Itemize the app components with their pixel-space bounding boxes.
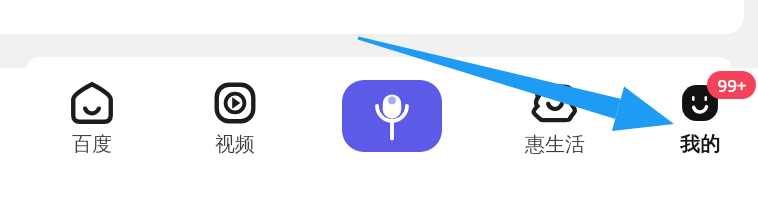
staticText: 百度 [72,132,112,157]
button[interactable]: 我的 [640,72,758,164]
button[interactable]: 惠生活 [495,72,615,164]
staticText: 视频 [215,132,255,157]
staticText: 我的 [680,132,720,157]
staticText: 99+ [717,74,747,97]
staticText: 惠生活 [525,132,585,157]
button[interactable]: 视频 [175,72,295,164]
button[interactable]: Voice search [342,80,442,152]
button[interactable]: 百度 [32,72,152,164]
